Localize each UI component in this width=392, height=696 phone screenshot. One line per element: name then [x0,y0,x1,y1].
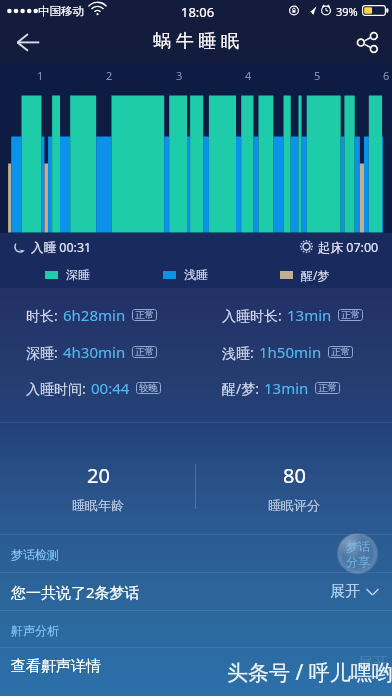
staticText: 5 [314,68,321,83]
staticText: 梦话检测 [11,547,59,562]
staticText: 正常 [135,346,154,358]
staticText: 醒/梦: [222,379,259,398]
staticText: 入睡 00:31 [31,239,92,256]
staticText: 正常 [331,346,350,358]
staticText: 展开 [330,582,360,601]
staticText: 查看鼾声详情 [11,657,101,676]
staticText: 6 [383,68,390,83]
staticText: 蜗 牛 睡 眠 [153,28,240,53]
staticText: 正常 [318,382,337,394]
button[interactable]: Share [342,21,392,62]
staticText: 浅睡 [184,267,208,282]
staticText: 分享 [346,554,370,569]
staticText: 较晚 [139,382,158,394]
staticText: 头条号 / 呼儿嘿哟 [227,658,392,687]
staticText: 入睡时长: [222,306,282,325]
staticText: 入睡时间: [26,379,86,398]
staticText: 18:06 [181,3,215,21]
staticText: 深睡 [66,267,90,282]
staticText: 中国移动 [38,4,84,18]
button[interactable]: 20 [0,462,196,513]
staticText: 醒/梦 [301,267,330,283]
staticText: 2 [106,68,113,83]
staticText: 浅睡: [222,343,254,362]
staticText: 1h50min [259,342,322,362]
button[interactable]: 梦话分享 [337,533,378,574]
button[interactable]: 您一共说了2条梦话 [0,573,392,610]
staticText: 13min [287,305,332,325]
staticText: 80 [283,462,306,489]
staticText: 20 [87,462,110,489]
staticText: 深睡: [26,343,58,362]
staticText: 正常 [135,309,154,321]
staticText: 睡眠年龄 [72,497,124,513]
staticText: 4 [245,68,252,83]
staticText: 您一共说了2条梦话 [11,582,140,602]
staticText: 1 [37,68,44,83]
staticText: 4h30min [63,342,126,362]
staticText: 展开 [358,654,388,673]
staticText: 39% [336,4,358,19]
staticText: 时长: [26,306,58,325]
staticText: 00:44 [91,378,130,398]
button[interactable]: Back [0,21,56,62]
staticText: 13min [264,378,309,398]
staticText: 睡眠评分 [268,497,320,513]
staticText: 3 [176,68,183,83]
button[interactable]: 查看鼾声详情 [0,648,392,685]
staticText: 梦话 [346,539,370,554]
staticText: 鼾声分析 [11,623,59,638]
staticText: 起床 07:00 [318,239,379,256]
button[interactable]: 80 [196,462,392,513]
staticText: 正常 [341,309,360,321]
staticText: 6h28min [63,305,126,325]
